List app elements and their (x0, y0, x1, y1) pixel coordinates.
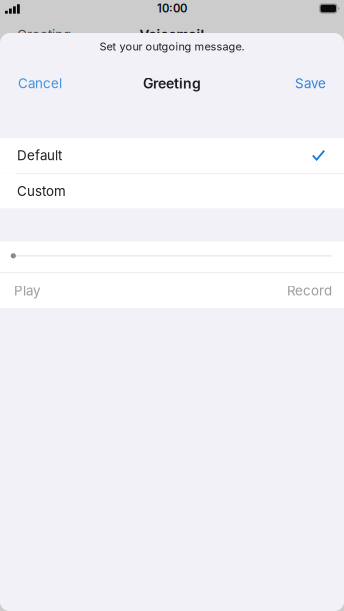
staticText: Greeting (17, 27, 71, 43)
staticText: Cancel (18, 75, 62, 91)
staticText: Greeting (143, 75, 201, 92)
button[interactable]: Cancel (14, 68, 66, 98)
staticText: Default (17, 147, 62, 163)
staticText: 10:00 (157, 2, 187, 15)
button[interactable]: Custom (0, 174, 344, 209)
staticText: Voicemail (139, 27, 204, 43)
staticText: Play (14, 283, 40, 299)
button[interactable]: Default (0, 138, 344, 173)
button[interactable]: Play (10, 274, 44, 308)
staticText: Set your outgoing message. (99, 40, 244, 53)
staticText: Save (295, 75, 326, 91)
button[interactable]: Record (283, 274, 336, 308)
button[interactable]: Save (291, 68, 330, 98)
staticText: Record (287, 283, 332, 299)
staticText: Custom (17, 183, 66, 199)
